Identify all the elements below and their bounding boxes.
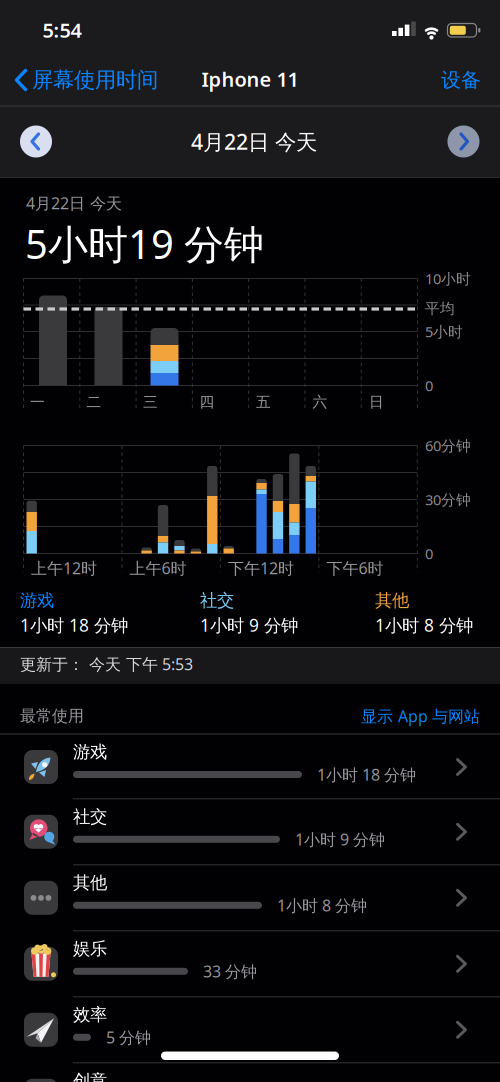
staticText: 一 bbox=[30, 393, 45, 411]
staticText: 游戏 bbox=[73, 741, 107, 763]
button[interactable]: 其他 bbox=[0, 865, 500, 931]
staticText: 平均 bbox=[425, 299, 455, 317]
staticText: 三 bbox=[143, 393, 158, 411]
staticText: 10小时 bbox=[425, 269, 471, 288]
staticText: 上午6时 bbox=[129, 557, 186, 579]
staticText: 33 分钟 bbox=[203, 961, 257, 982]
staticText: 社交 bbox=[200, 590, 234, 611]
button[interactable]: 娱乐 bbox=[0, 931, 500, 997]
staticText: Iphone 11 bbox=[201, 66, 298, 92]
staticText: 设备 bbox=[441, 68, 481, 92]
staticText: 更新于： 今天 下午 5:53 bbox=[20, 653, 193, 675]
staticText: 其他 bbox=[73, 872, 107, 893]
button[interactable]: 社交 bbox=[0, 799, 500, 865]
staticText: 四 bbox=[199, 393, 214, 411]
staticText: 社交 bbox=[73, 806, 107, 827]
staticText: 创意 bbox=[73, 1070, 107, 1082]
button[interactable]: 效率 bbox=[0, 997, 500, 1063]
staticText: 0 bbox=[425, 376, 433, 395]
staticText: 5小时19 分钟 bbox=[25, 217, 264, 270]
staticText: 1小时 18 分钟 bbox=[317, 764, 416, 785]
staticText: 其他 bbox=[375, 590, 409, 611]
staticText: 4月22日 今天 bbox=[191, 127, 317, 156]
staticText: 1小时 8 分钟 bbox=[375, 613, 473, 636]
button[interactable]: 游戏 bbox=[0, 734, 500, 800]
staticText: 下午6时 bbox=[326, 557, 383, 579]
staticText: 30分钟 bbox=[425, 490, 471, 509]
staticText: 五 bbox=[256, 393, 271, 411]
button[interactable] bbox=[20, 125, 52, 157]
staticText: 0 bbox=[425, 544, 433, 563]
staticText: 二 bbox=[86, 393, 101, 411]
staticText: 最常使用 bbox=[20, 706, 84, 726]
staticText: 下午12时 bbox=[228, 557, 294, 579]
staticText: 1小时 9 分钟 bbox=[295, 829, 385, 850]
staticText: 1小时 18 分钟 bbox=[20, 613, 128, 636]
staticText: 5 分钟 bbox=[106, 1027, 151, 1048]
staticText: 1小时 8 分钟 bbox=[277, 895, 367, 916]
button[interactable]: 显示 App 与网站 bbox=[300, 702, 480, 730]
staticText: 日 bbox=[369, 393, 384, 411]
staticText: 1小时 9 分钟 bbox=[200, 613, 298, 636]
staticText: 娱乐 bbox=[73, 938, 107, 959]
staticText: 4月22日 今天 bbox=[26, 192, 122, 214]
staticText: 游戏 bbox=[20, 590, 54, 611]
button[interactable]: 创意 bbox=[0, 1063, 500, 1082]
staticText: 上午12时 bbox=[31, 557, 97, 579]
staticText: 效率 bbox=[73, 1004, 107, 1025]
button[interactable]: 屏幕使用时间 bbox=[14, 66, 174, 93]
staticText: 显示 App 与网站 bbox=[361, 705, 480, 727]
staticText: 5小时 bbox=[425, 322, 463, 341]
staticText: 六 bbox=[312, 393, 327, 411]
button[interactable] bbox=[447, 125, 479, 157]
staticText: 60分钟 bbox=[425, 436, 471, 455]
staticText: 5:54 bbox=[42, 17, 81, 43]
staticText: 屏幕使用时间 bbox=[32, 67, 158, 93]
button[interactable]: 设备 bbox=[425, 65, 485, 95]
